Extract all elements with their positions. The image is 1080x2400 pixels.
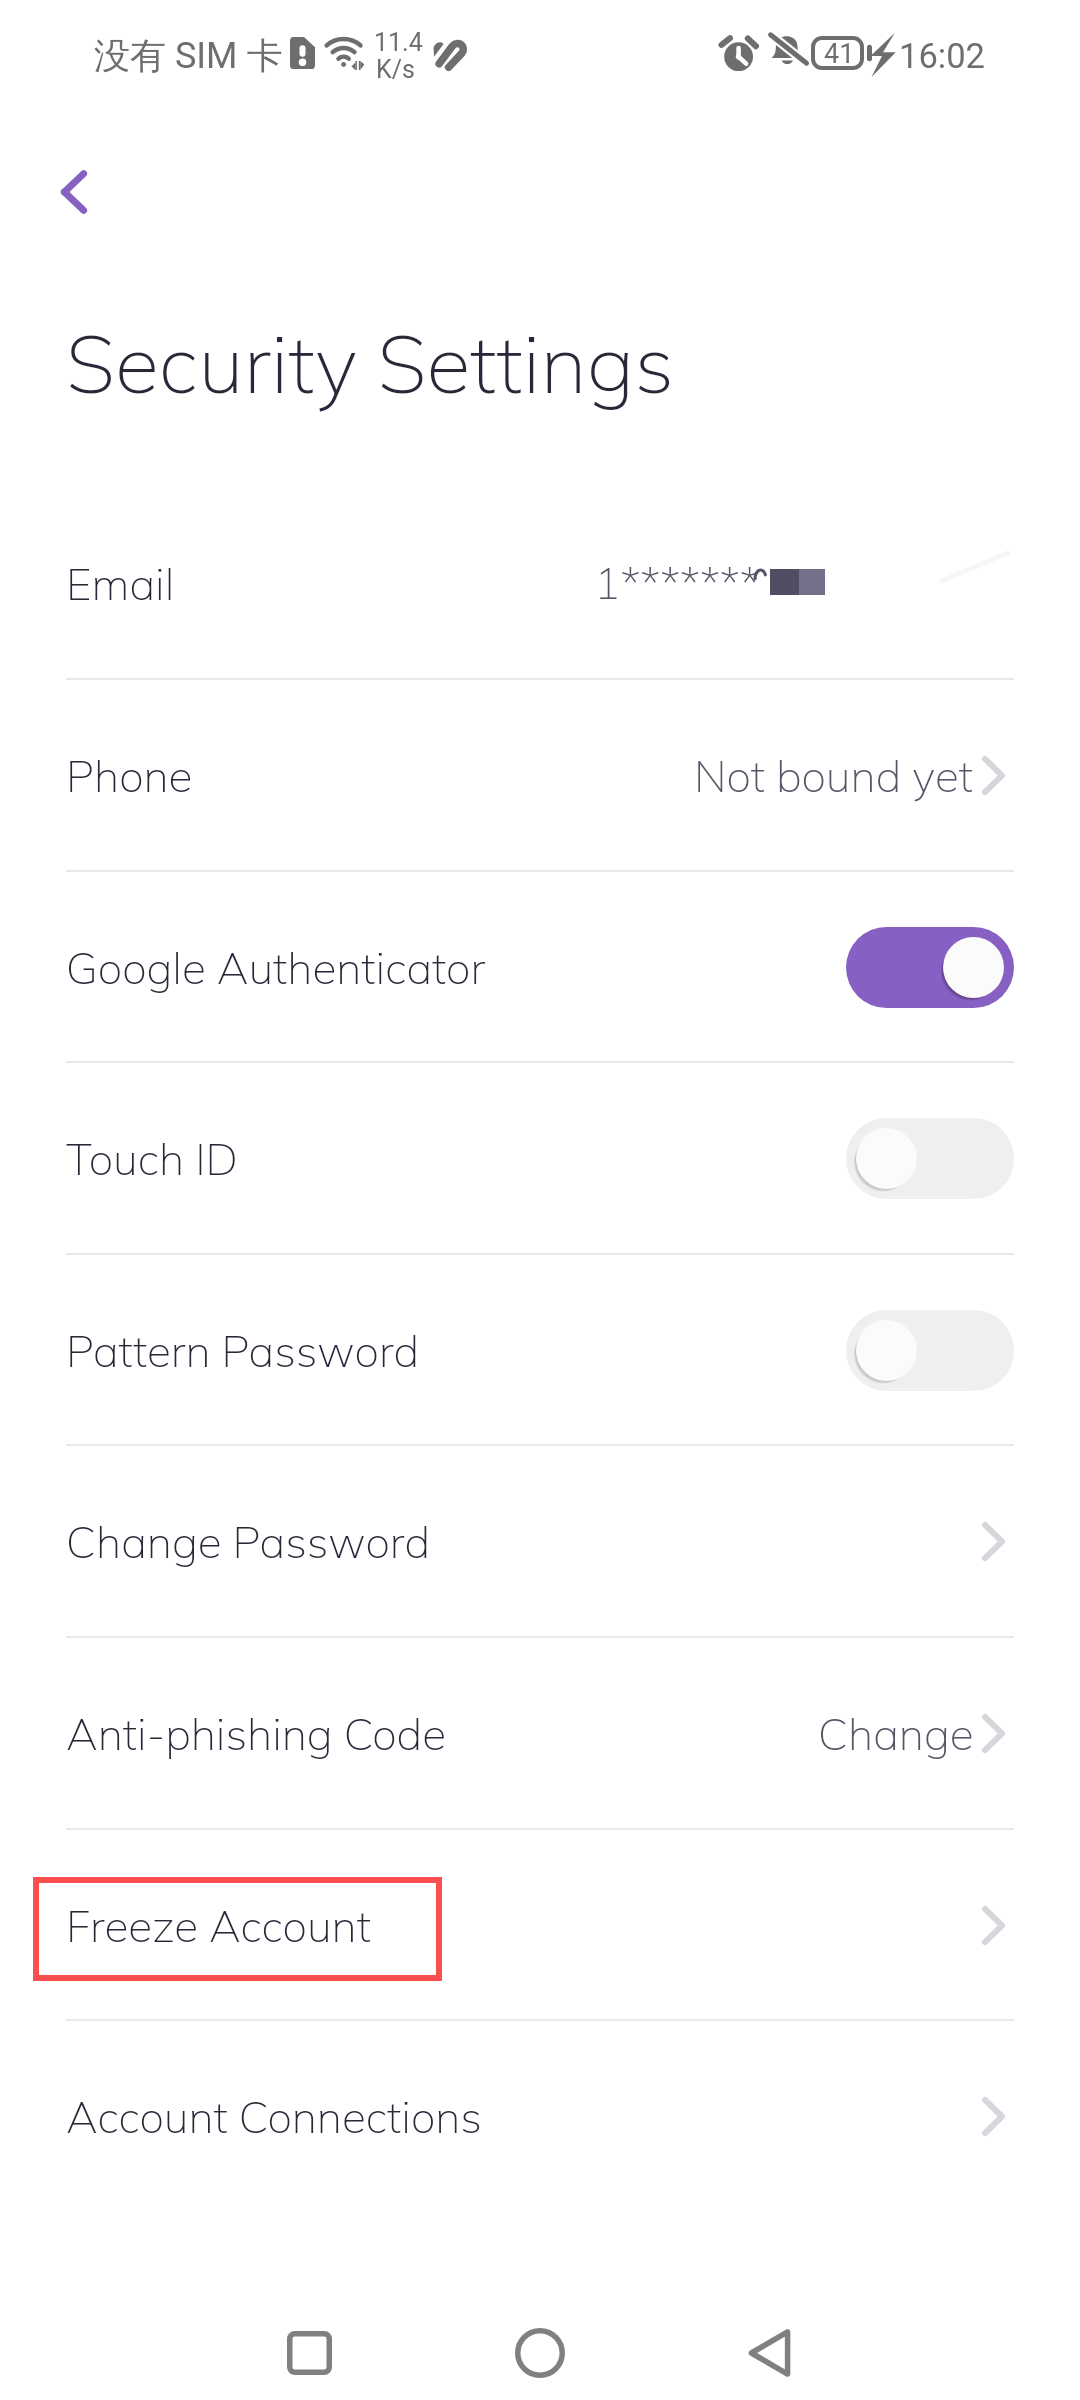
button[interactable]: Phone — [0, 679, 1080, 871]
button[interactable]: Anti-phishing Code — [0, 1637, 1080, 1829]
button[interactable]: Enabled — [846, 927, 1014, 1008]
staticText: Email — [66, 556, 175, 611]
staticText: Security Settings — [66, 312, 675, 414]
button[interactable]: Account Connections — [0, 2020, 1080, 2212]
button[interactable]: Google Authenticator — [0, 871, 1080, 1063]
staticText: 没有 SIM 卡 — [94, 33, 283, 78]
button[interactable]: Back — [34, 152, 114, 232]
staticText: Touch ID — [66, 1131, 238, 1186]
staticText: Change Password — [66, 1514, 431, 1569]
button[interactable]: Home — [450, 2263, 630, 2400]
button[interactable]: Pattern Password — [0, 1254, 1080, 1446]
staticText: Anti-phishing Code — [66, 1706, 447, 1761]
staticText: K/s — [376, 55, 415, 84]
staticText: 16:02 — [899, 36, 985, 76]
staticText: 1******* — [594, 555, 760, 610]
button[interactable]: Touch ID — [0, 1062, 1080, 1254]
button[interactable]: Disabled — [846, 1118, 1014, 1199]
button[interactable]: Recent apps — [219, 2263, 399, 2400]
staticText: Pattern Password — [66, 1323, 420, 1378]
staticText: Freeze Account — [66, 1898, 371, 1953]
staticText: 11.4 — [374, 28, 423, 57]
button[interactable]: Disabled — [846, 1310, 1014, 1391]
staticText: Google Authenticator — [66, 940, 486, 995]
button[interactable]: Change Password — [0, 1445, 1080, 1637]
button[interactable]: Email — [0, 487, 1080, 679]
staticText: Change — [818, 1706, 974, 1761]
staticText: Phone — [66, 748, 193, 803]
staticText: 41 — [824, 38, 855, 70]
staticText: Account Connections — [66, 2089, 482, 2144]
button[interactable]: Back — [679, 2263, 859, 2400]
button[interactable]: Freeze Account — [0, 1829, 1080, 2021]
staticText: Not bound yet — [694, 748, 974, 803]
